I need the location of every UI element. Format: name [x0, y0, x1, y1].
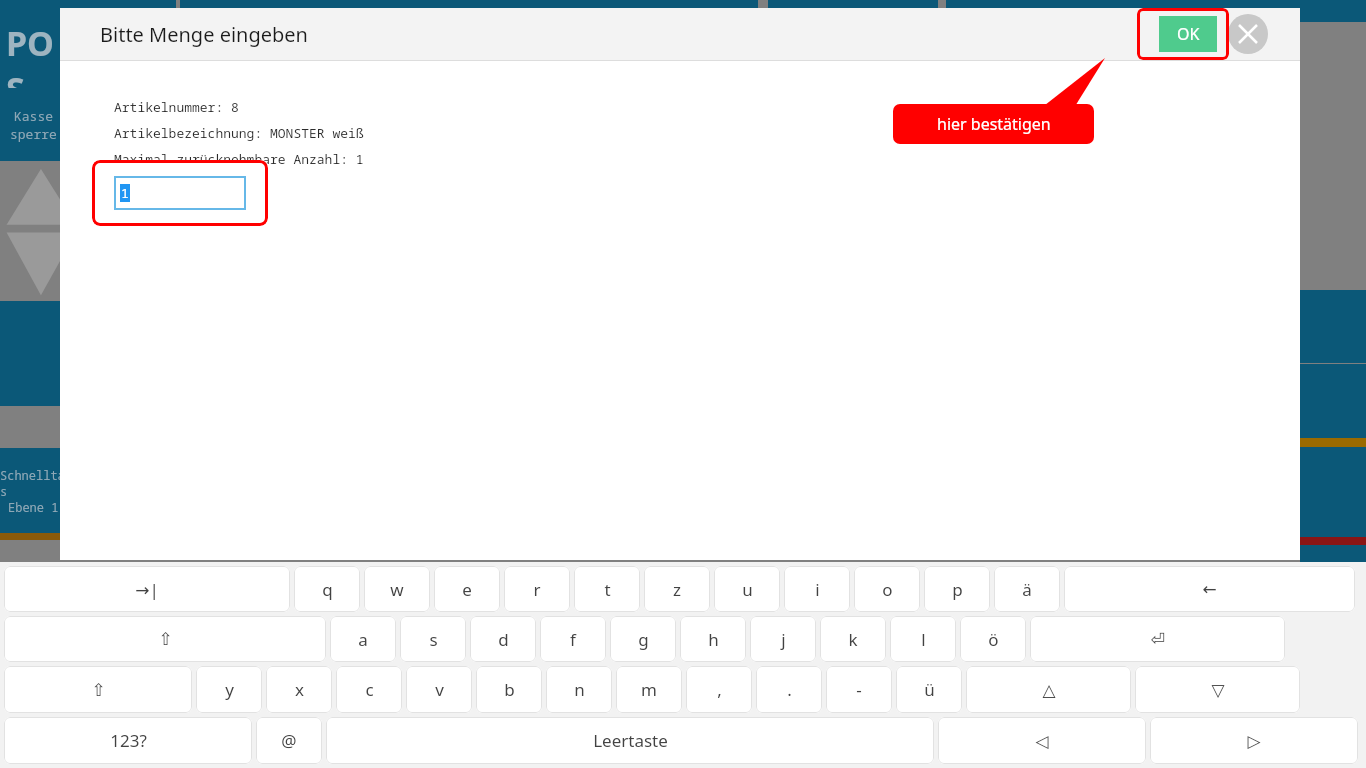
button[interactable]: ▽	[1135, 666, 1300, 713]
staticText: w	[390, 578, 404, 601]
staticText: ⇧	[91, 680, 106, 700]
staticText: POS	[6, 20, 66, 88]
staticText: OK	[1177, 23, 1200, 45]
staticText: j	[781, 628, 786, 651]
staticText: ▷	[1247, 731, 1261, 751]
staticText: -	[856, 678, 862, 701]
staticText: 123?	[110, 729, 147, 752]
button[interactable]: e	[434, 566, 500, 612]
staticText: s	[429, 628, 438, 651]
staticText: k	[848, 628, 858, 651]
button[interactable]: ⇧	[4, 666, 192, 713]
button[interactable]: b	[476, 666, 542, 713]
button[interactable]: t	[574, 566, 640, 612]
button[interactable]: 123?	[4, 717, 252, 764]
staticText: Maximal zurücknehmbare Anzahl: 1	[114, 150, 364, 168]
staticText: n	[574, 678, 585, 701]
button[interactable]: ,	[686, 666, 752, 713]
button[interactable]: ←	[1064, 566, 1355, 612]
staticText: Artikelbezeichnung: MONSTER weiß	[114, 124, 364, 142]
staticText: ,	[717, 678, 722, 701]
staticText: o	[882, 578, 893, 601]
staticText: a	[358, 628, 368, 651]
button[interactable]: -	[826, 666, 892, 713]
staticText: r	[533, 578, 541, 601]
button[interactable]: ▷	[1150, 717, 1358, 764]
button[interactable]: Schließen	[1228, 14, 1268, 54]
staticText: l	[921, 628, 926, 651]
staticText: Ebene 1	[8, 499, 59, 515]
staticText: e	[462, 578, 472, 601]
button[interactable]: j	[750, 616, 816, 662]
staticText: q	[322, 578, 333, 601]
button[interactable]: p	[924, 566, 990, 612]
staticText: b	[504, 678, 515, 701]
button[interactable]: a	[330, 616, 396, 662]
staticText: ⇧	[158, 629, 173, 649]
button[interactable]: ⏎	[1030, 616, 1285, 662]
staticText: ←	[1202, 579, 1217, 599]
button[interactable]: h	[680, 616, 746, 662]
button[interactable]: x	[266, 666, 332, 713]
staticText: y	[225, 678, 234, 701]
staticText: h	[708, 628, 719, 651]
button[interactable]: .	[756, 666, 822, 713]
button[interactable]: 1	[114, 176, 246, 210]
button[interactable]: ⇧	[4, 616, 326, 662]
button[interactable]: n	[546, 666, 612, 713]
button[interactable]: f	[540, 616, 606, 662]
button[interactable]: o	[854, 566, 920, 612]
button[interactable]: ö	[960, 616, 1026, 662]
button[interactable]: k	[820, 616, 886, 662]
staticText: m	[641, 678, 657, 701]
staticText: Leertaste	[593, 729, 668, 752]
staticText: d	[498, 628, 509, 651]
staticText: ä	[1022, 578, 1032, 601]
staticText: hier bestätigen	[937, 113, 1051, 135]
staticText: △	[1042, 680, 1056, 700]
staticText: i	[815, 578, 820, 601]
staticText: Kasse	[14, 107, 54, 125]
button[interactable]: →|	[4, 566, 290, 612]
button[interactable]: s	[400, 616, 466, 662]
button[interactable]: @	[256, 717, 322, 764]
button[interactable]: g	[610, 616, 676, 662]
button[interactable]: z	[644, 566, 710, 612]
button[interactable]: m	[616, 666, 682, 713]
button[interactable]: d	[470, 616, 536, 662]
button[interactable]: c	[336, 666, 402, 713]
staticText: ◁	[1035, 731, 1049, 751]
button[interactable]: r	[504, 566, 570, 612]
button[interactable]: i	[784, 566, 850, 612]
staticText: @	[281, 729, 297, 752]
staticText: u	[742, 578, 753, 601]
staticText: c	[365, 678, 374, 701]
staticText: Bitte Menge eingeben	[100, 21, 308, 48]
staticText: g	[638, 628, 649, 651]
staticText: z	[673, 578, 681, 601]
staticText: ⏎	[1150, 629, 1165, 649]
button[interactable]: Leertaste	[326, 717, 934, 764]
button[interactable]: OK	[1159, 16, 1217, 52]
button[interactable]: q	[294, 566, 360, 612]
staticText: ▽	[1211, 680, 1225, 700]
button[interactable]: ä	[994, 566, 1060, 612]
staticText: f	[570, 628, 576, 651]
button[interactable]: ◁	[938, 717, 1146, 764]
staticText: 1	[121, 184, 129, 202]
button[interactable]: v	[406, 666, 472, 713]
button[interactable]: y	[196, 666, 262, 713]
staticText: ö	[988, 628, 999, 651]
staticText: Schnelltas	[0, 467, 66, 499]
button[interactable]: u	[714, 566, 780, 612]
button[interactable]: ü	[896, 666, 962, 713]
staticText: v	[435, 678, 444, 701]
button[interactable]: w	[364, 566, 430, 612]
staticText: Artikelnummer: 8	[114, 98, 239, 116]
button[interactable]: △	[966, 666, 1131, 713]
button[interactable]: l	[890, 616, 956, 662]
